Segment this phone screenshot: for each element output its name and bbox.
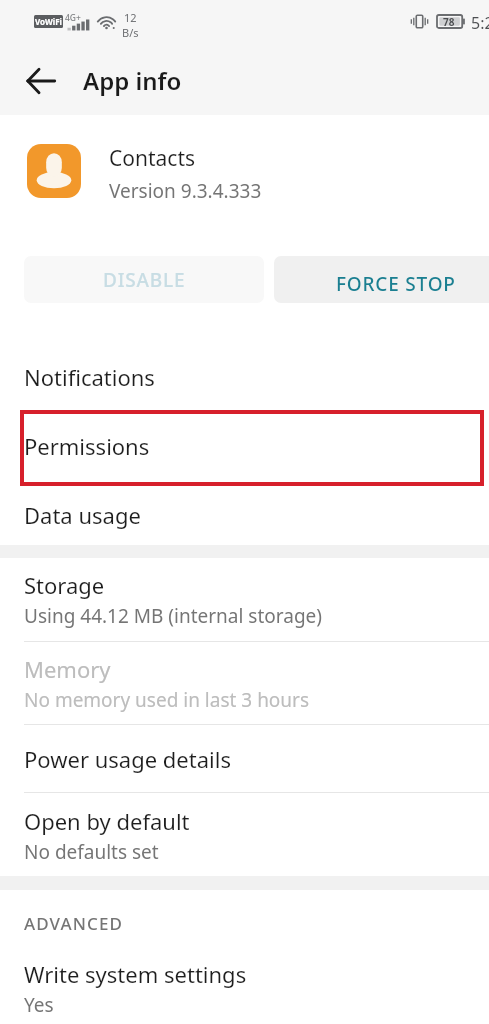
staticText: Version 9.3.4.333 <box>109 178 262 204</box>
staticText: 78 <box>443 15 455 28</box>
staticText: 4G+ <box>65 12 81 24</box>
button[interactable]: Open by default <box>0 793 489 877</box>
button[interactable]: FORCE STOP <box>274 256 489 303</box>
button[interactable]: Write system settings <box>0 946 489 1024</box>
button[interactable]: Memory <box>0 642 489 724</box>
staticText: Permissions <box>24 431 150 461</box>
button[interactable]: Permissions <box>0 411 489 480</box>
staticText: Power usage details <box>24 744 231 774</box>
staticText: Storage <box>24 570 105 600</box>
button[interactable]: Power usage details <box>0 725 489 792</box>
staticText: ADVANCED <box>24 912 123 935</box>
staticText: Data usage <box>24 500 141 530</box>
button[interactable]: Back <box>17 57 65 105</box>
staticText: B/s <box>122 25 139 40</box>
staticText: VoWiFi <box>35 16 62 27</box>
button[interactable]: DISABLE <box>24 256 264 303</box>
staticText: Open by default <box>24 806 190 836</box>
staticText: 5:2 <box>471 12 489 34</box>
staticText: Yes <box>24 992 54 1018</box>
staticText: 12 <box>124 10 137 25</box>
button[interactable]: Data usage <box>0 480 489 549</box>
staticText: Contacts <box>109 144 196 173</box>
staticText: Memory <box>24 654 111 684</box>
staticText: FORCE STOP <box>336 271 456 297</box>
button[interactable]: Storage <box>0 558 489 641</box>
staticText: Notifications <box>24 362 155 392</box>
staticText: App info <box>83 64 182 97</box>
staticText: Write system settings <box>24 959 247 989</box>
staticText: No defaults set <box>24 839 159 865</box>
button[interactable]: Notifications <box>0 342 489 411</box>
staticText: DISABLE <box>103 267 186 293</box>
staticText: Using 44.12 MB (internal storage) <box>24 603 322 629</box>
staticText: No memory used in last 3 hours <box>24 687 310 713</box>
